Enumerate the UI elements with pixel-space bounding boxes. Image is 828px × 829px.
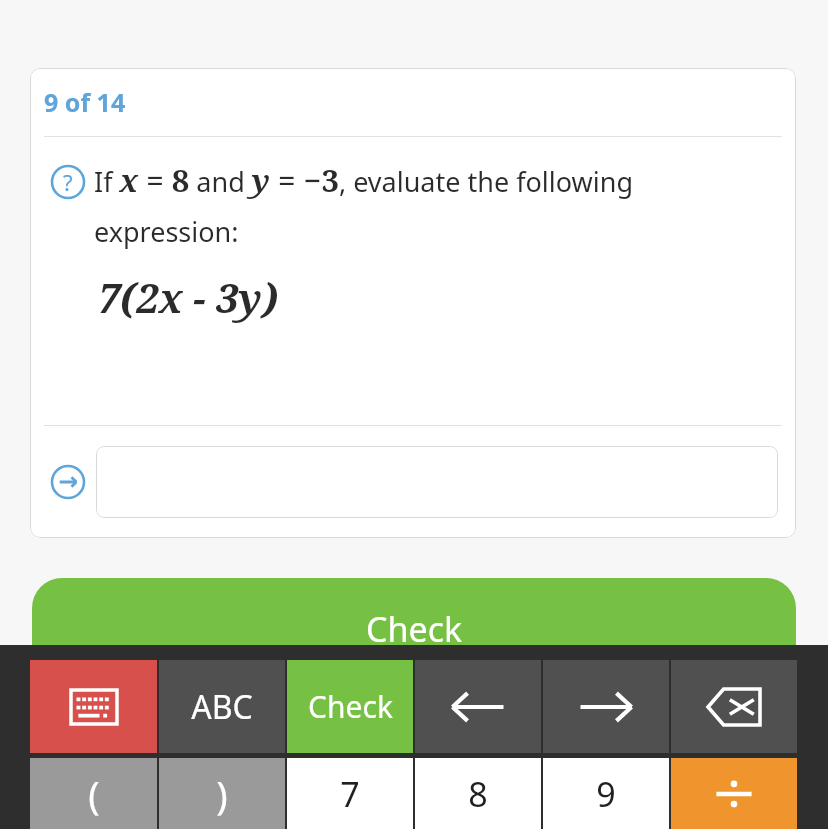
button[interactable]: 9: [543, 758, 669, 829]
staticText: ?: [63, 167, 73, 197]
button[interactable]: Left: [415, 660, 541, 753]
button[interactable]: Check: [287, 660, 413, 753]
button[interactable]: Right: [543, 660, 669, 753]
button[interactable]: 8: [415, 758, 541, 829]
button[interactable]: Hint: [50, 164, 86, 200]
staticText: ABC: [191, 685, 253, 729]
button[interactable]: Backspace: [671, 660, 797, 753]
staticText: Check: [366, 606, 463, 652]
button[interactable]: Keyboard: [30, 660, 157, 753]
button[interactable]: 7: [287, 758, 413, 829]
staticText: (: [88, 768, 100, 820]
button[interactable]: [96, 446, 778, 518]
button[interactable]: (: [30, 758, 157, 829]
staticText: Check: [308, 686, 393, 727]
button[interactable]: Divide: [671, 758, 797, 829]
staticText: 7(2x − 3y): [98, 270, 278, 324]
button[interactable]: ): [159, 758, 285, 829]
button[interactable]: Check: [32, 578, 796, 678]
staticText: ): [216, 768, 228, 820]
button[interactable]: Submit answer: [50, 464, 86, 500]
staticText: 7: [340, 771, 360, 817]
staticText: If x = 8 and y = −3, evaluate the follow…: [94, 159, 772, 250]
staticText: 9: [596, 771, 616, 817]
button[interactable]: ABC: [159, 660, 285, 753]
staticText: 9 of 14: [44, 85, 126, 119]
staticText: 8: [468, 771, 488, 817]
